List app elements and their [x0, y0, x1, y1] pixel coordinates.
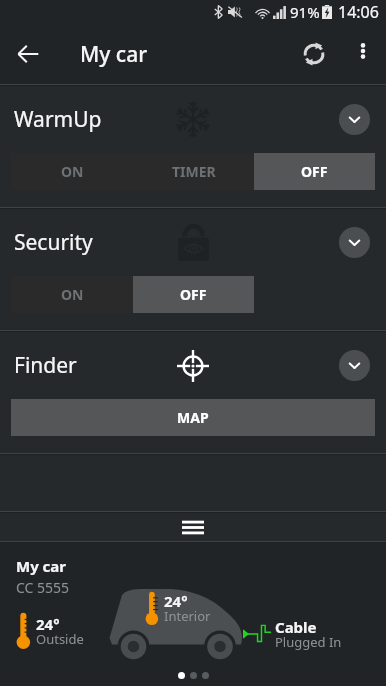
staticText: 24°	[36, 614, 60, 634]
button[interactable]: OFF	[133, 276, 254, 313]
button[interactable]: More options	[340, 28, 386, 74]
staticText: TIMER	[172, 162, 216, 181]
button[interactable]: Back	[0, 26, 56, 82]
button[interactable]: Menu	[0, 513, 386, 541]
staticText: Interior	[164, 607, 211, 625]
staticText: My car	[80, 40, 148, 69]
staticText: Plugged In	[275, 633, 342, 651]
button[interactable]: MAP	[11, 399, 375, 436]
staticText: OFF	[301, 162, 328, 181]
staticText: CC 5555	[16, 578, 70, 597]
button[interactable]: ON	[11, 276, 133, 313]
staticText: 14:06	[338, 1, 379, 23]
button[interactable]: ON	[11, 153, 133, 190]
button[interactable]: OFF	[254, 153, 375, 190]
staticText: ON	[61, 285, 84, 304]
staticText: Finder	[14, 351, 77, 380]
staticText: Outside	[36, 630, 84, 648]
staticText: 24°	[164, 591, 188, 611]
staticText: Cable	[275, 617, 317, 637]
staticText: OFF	[180, 285, 207, 304]
staticText: 91%	[290, 2, 320, 22]
button[interactable]: Expand WarmUp	[339, 104, 370, 135]
button[interactable]: Expand Security	[339, 227, 370, 258]
staticText: WarmUp	[14, 105, 102, 134]
staticText: Security	[14, 228, 93, 257]
button[interactable]: Expand Finder	[339, 350, 370, 381]
staticText: ON	[61, 162, 84, 181]
staticText: My car	[16, 556, 67, 576]
staticText: MAP	[177, 408, 209, 427]
button[interactable]: Refresh	[288, 28, 340, 80]
button[interactable]: TIMER	[133, 153, 254, 190]
